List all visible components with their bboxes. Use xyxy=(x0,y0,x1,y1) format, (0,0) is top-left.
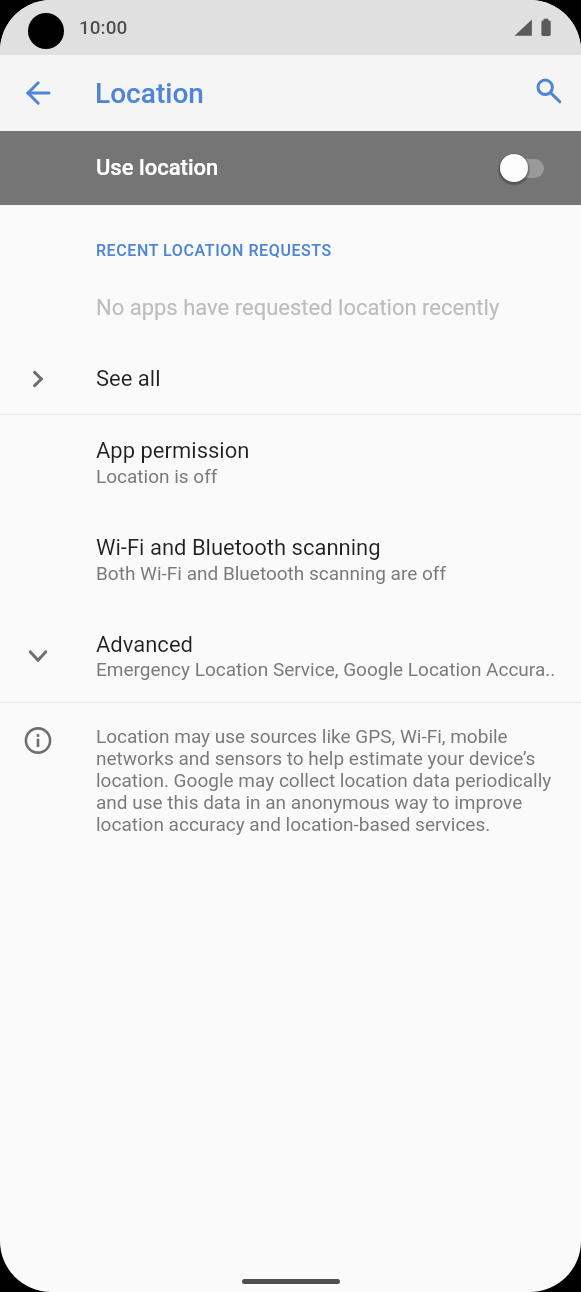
button[interactable]: Advanced xyxy=(0,584,581,680)
button[interactable]: Use location xyxy=(0,131,581,205)
staticText: Use location xyxy=(96,155,219,181)
staticText: App permission xyxy=(96,438,250,464)
button[interactable]: See all xyxy=(0,356,581,402)
staticText: RECENT LOCATION REQUESTS xyxy=(96,241,332,260)
staticText: Emergency Location Service, Google Locat… xyxy=(96,658,556,680)
staticText: Wi-Fi and Bluetooth scanning xyxy=(96,535,381,561)
staticText: No apps have requested location recently xyxy=(96,295,500,321)
staticText: 10:00 xyxy=(79,16,128,38)
button[interactable]: Wi-Fi and Bluetooth scanning xyxy=(0,487,581,584)
staticText: Location may use sources like GPS, Wi-Fi… xyxy=(96,726,558,836)
staticText: Advanced xyxy=(96,632,193,658)
staticText: Both Wi-Fi and Bluetooth scanning are of… xyxy=(96,562,446,584)
staticText: Location is off xyxy=(96,465,218,487)
staticText: See all xyxy=(96,366,161,392)
button[interactable]: App permission xyxy=(0,415,581,487)
staticText: Location xyxy=(95,77,204,110)
button[interactable]: Back xyxy=(15,65,71,121)
button[interactable]: Search xyxy=(521,65,577,121)
